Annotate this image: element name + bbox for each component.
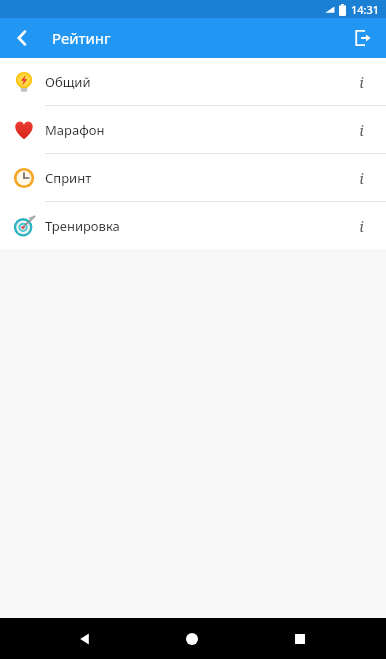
button[interactable]: Марафон	[0, 106, 386, 153]
staticText: Спринт	[45, 169, 92, 187]
staticText: i	[359, 216, 364, 236]
button[interactable]: Back	[4, 20, 40, 56]
staticText: Общий	[45, 73, 91, 91]
button[interactable]: Общий	[0, 58, 386, 105]
button[interactable]: Info	[344, 65, 378, 99]
staticText: i	[359, 120, 364, 140]
staticText: Марафон	[45, 121, 105, 139]
button[interactable]: Back	[63, 618, 107, 659]
button[interactable]: Home	[170, 618, 214, 659]
staticText: Тренировка	[45, 217, 120, 235]
button[interactable]: Log out	[344, 20, 380, 56]
button[interactable]: Info	[344, 209, 378, 243]
staticText: 14:31	[351, 2, 380, 17]
staticText: i	[359, 72, 364, 92]
staticText: i	[359, 168, 364, 188]
button[interactable]: Info	[344, 161, 378, 195]
button[interactable]: Спринт	[0, 154, 386, 201]
button[interactable]: Recent apps	[278, 618, 322, 659]
staticText: Рейтинг	[52, 28, 111, 48]
button[interactable]: Тренировка	[0, 202, 386, 249]
button[interactable]: Info	[344, 113, 378, 147]
